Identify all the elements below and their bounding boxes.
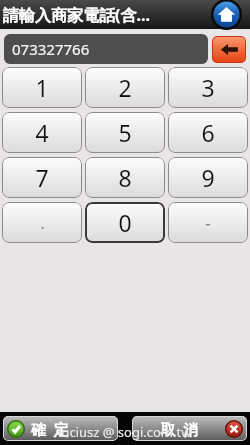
staticText: 0	[118, 207, 132, 238]
button[interactable]: 9	[168, 157, 248, 198]
staticText: 8	[118, 162, 132, 193]
staticText: 2	[118, 72, 132, 103]
button[interactable]: 7	[2, 157, 82, 198]
button[interactable]: 073327766	[4, 34, 208, 64]
button[interactable]: 0	[85, 202, 165, 243]
button[interactable]: Backspace	[212, 36, 246, 63]
button[interactable]: 8	[85, 157, 165, 198]
button[interactable]: 取 消	[132, 416, 247, 441]
staticText: 4	[35, 117, 49, 148]
staticText: 7	[35, 162, 49, 193]
staticText: -	[205, 211, 211, 234]
button[interactable]: 3	[168, 67, 248, 108]
staticText: .	[40, 211, 45, 234]
button[interactable]: 1	[2, 67, 82, 108]
staticText: 取 消	[136, 419, 223, 439]
staticText: 請輸入商家電話(含...	[3, 4, 150, 26]
staticText: 9	[201, 162, 215, 193]
button[interactable]: 6	[168, 112, 248, 153]
staticText: 5	[118, 117, 132, 148]
button[interactable]: .	[2, 202, 82, 243]
staticText: luciusz @ sogi.com.tw	[58, 423, 192, 441]
button[interactable]: 2	[85, 67, 165, 108]
button[interactable]: -	[168, 202, 248, 243]
button[interactable]: 5	[85, 112, 165, 153]
staticText: 1	[35, 72, 49, 103]
staticText: 073327766	[12, 39, 90, 59]
button[interactable]: 確 定	[3, 416, 118, 441]
staticText: 確 定	[31, 419, 114, 439]
button[interactable]: Home	[211, 0, 242, 30]
staticText: 6	[201, 117, 215, 148]
button[interactable]: 4	[2, 112, 82, 153]
staticText: 3	[201, 72, 215, 103]
